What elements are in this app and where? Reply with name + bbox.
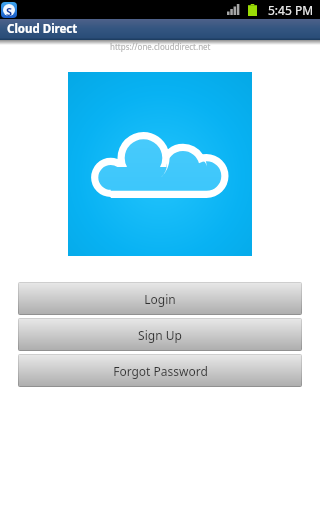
staticText: Cloud Direct (7, 21, 78, 37)
button[interactable]: Sign Up (19, 319, 301, 350)
staticText: Login (144, 291, 176, 307)
staticText: 5:45 PM (268, 2, 314, 18)
staticText: Sign Up (138, 327, 182, 343)
staticText: S (6, 4, 13, 16)
button[interactable]: Forgot Password (19, 355, 301, 386)
button[interactable]: Login (19, 283, 301, 314)
staticText: https://one.clouddirect.net (110, 41, 211, 52)
staticText: Forgot Password (113, 363, 208, 379)
